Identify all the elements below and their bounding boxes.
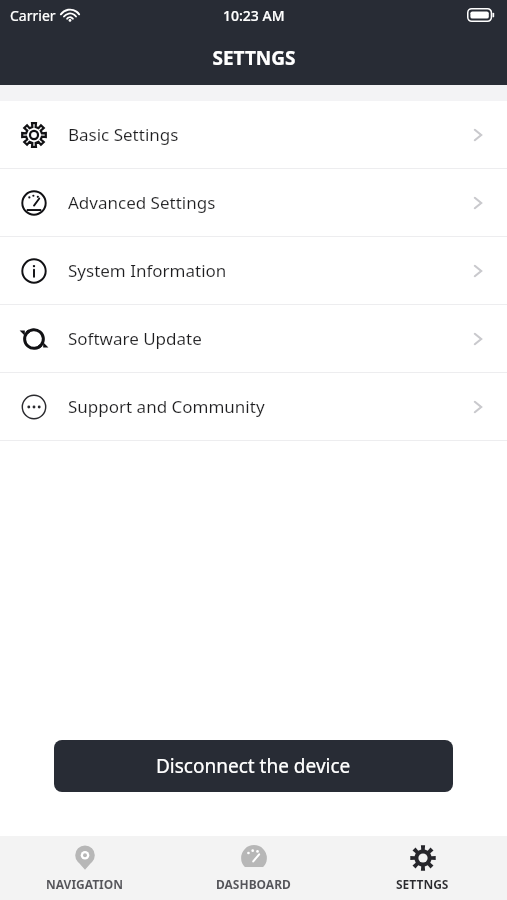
staticText: SETTNGS <box>212 45 296 71</box>
other: System Information <box>21 258 47 284</box>
button[interactable]: Disconnect the device <box>54 740 453 792</box>
button[interactable]: Dashboard tab <box>169 836 338 900</box>
staticText: Software Update <box>68 327 202 350</box>
staticText: NAVIGATION <box>46 876 124 892</box>
other: Dashboard tab <box>240 844 268 872</box>
other: Software Update <box>21 326 47 352</box>
button[interactable]: Advanced Settings <box>0 169 507 236</box>
staticText: SETTNGS <box>396 876 449 892</box>
button[interactable]: Support and Community <box>0 373 507 440</box>
other: Advanced Settings <box>21 190 47 216</box>
staticText: DASHBOARD <box>216 876 291 892</box>
button[interactable]: Basic Settings <box>0 101 507 168</box>
button[interactable]: Navigation tab <box>0 836 169 900</box>
staticText: System Information <box>68 259 227 282</box>
button[interactable]: Software Update <box>0 305 507 372</box>
button[interactable]: System Information <box>0 237 507 304</box>
staticText: Carrier <box>10 6 56 25</box>
other: Settings tab <box>409 844 437 872</box>
staticText: Support and Community <box>68 395 265 418</box>
staticText: 10:23 AM <box>223 6 285 25</box>
staticText: Disconnect the device <box>156 753 351 779</box>
other: Navigation tab <box>71 844 99 872</box>
other: Basic Settings <box>21 122 47 148</box>
staticText: Advanced Settings <box>68 191 216 214</box>
button[interactable]: Settings tab <box>338 836 507 900</box>
staticText: Basic Settings <box>68 123 179 146</box>
other: Support and Community <box>21 394 47 420</box>
